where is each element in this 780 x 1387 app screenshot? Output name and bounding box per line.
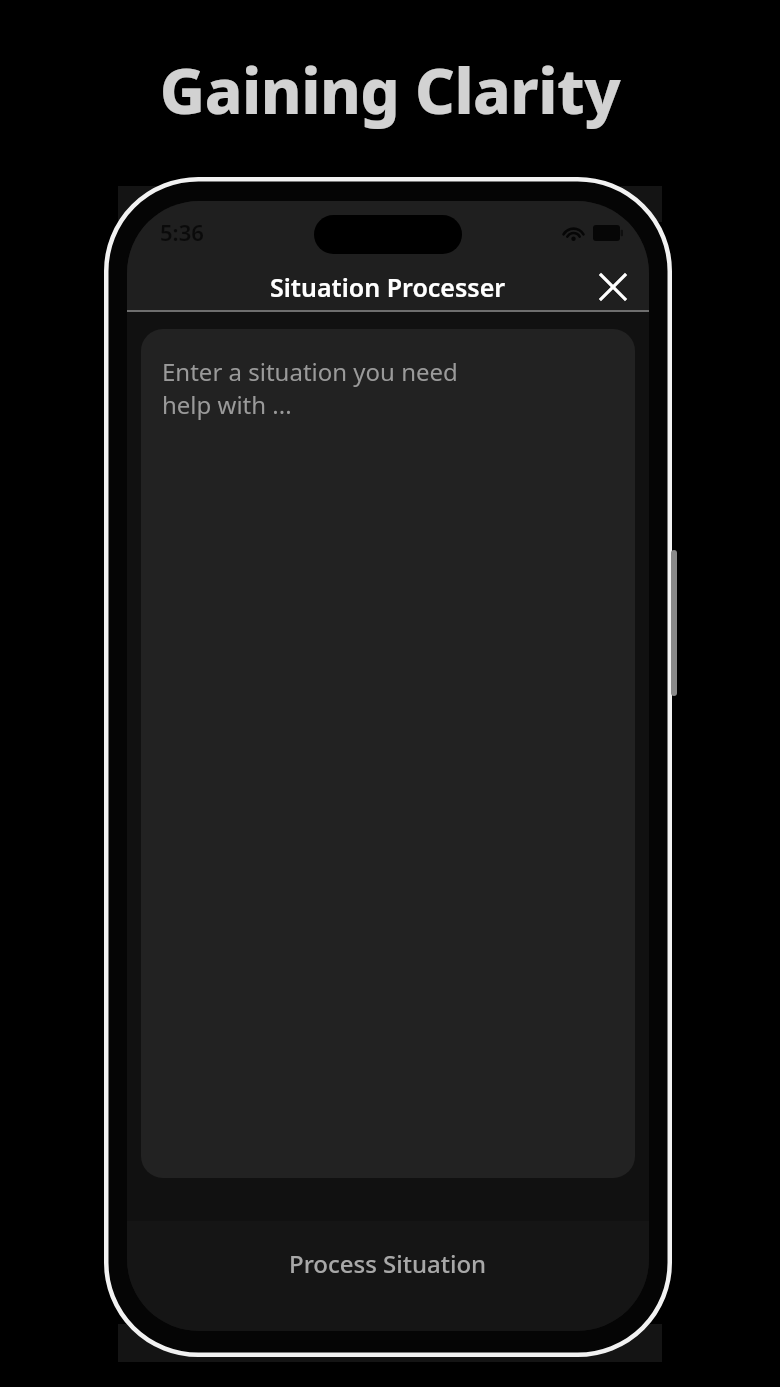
- staticText: Situation Processer: [270, 270, 506, 304]
- button[interactable]: Close: [589, 263, 637, 310]
- button[interactable]: Process Situation: [127, 1221, 649, 1331]
- staticText: Gaining Clarity: [0, 48, 780, 132]
- button[interactable]: Enter a situation you need help with ...: [141, 329, 635, 1178]
- staticText: Process Situation: [289, 1247, 487, 1280]
- staticText: Enter a situation you need help with ...: [162, 355, 458, 421]
- staticText: 5:36: [160, 217, 204, 247]
